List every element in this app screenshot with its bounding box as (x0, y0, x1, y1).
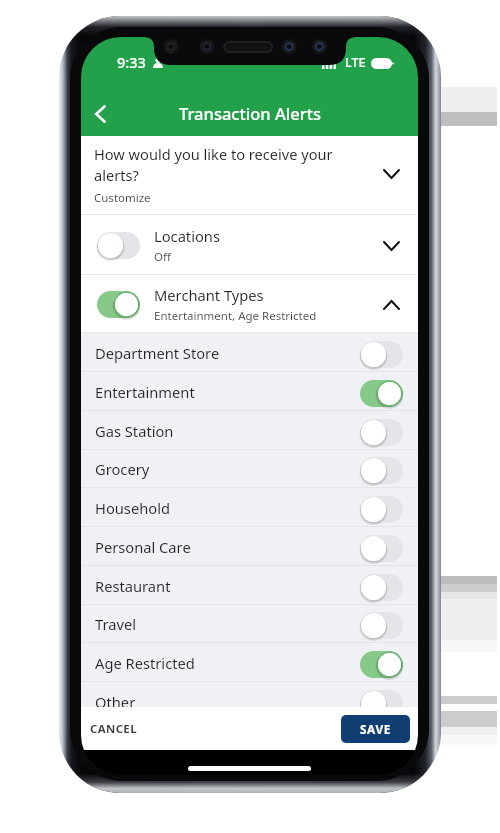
staticText: Restaurant (95, 576, 171, 596)
button[interactable]: Toggle off (360, 574, 403, 601)
staticText: Travel (95, 614, 136, 634)
staticText: Locations (154, 226, 220, 246)
staticText: Transaction Alerts (179, 102, 321, 124)
button[interactable]: Household (81, 488, 418, 527)
staticText: Customize (94, 190, 151, 206)
button[interactable]: Toggle off (360, 457, 403, 484)
staticText: Age Restricted (95, 653, 195, 673)
staticText: Entertainment, Age Restricted (154, 308, 317, 324)
button[interactable]: Department Store (81, 333, 418, 372)
staticText: Off (154, 249, 171, 265)
staticText: Other (95, 692, 136, 712)
button[interactable]: Personal Care (81, 527, 418, 566)
button[interactable]: Toggle off (360, 690, 403, 717)
button[interactable]: Restaurant (81, 566, 418, 605)
button[interactable]: Toggle off (360, 612, 403, 639)
button[interactable]: Toggle off (360, 419, 403, 446)
button[interactable]: Toggle off (97, 232, 140, 259)
button[interactable]: Toggle on (81, 275, 418, 333)
button[interactable]: Travel (81, 604, 418, 643)
staticText: Household (95, 498, 170, 518)
staticText: CANCEL (90, 721, 137, 737)
button[interactable]: Toggle on (360, 380, 403, 407)
staticText: Grocery (95, 459, 150, 479)
button[interactable]: Toggle off (360, 535, 403, 562)
button[interactable]: CANCEL (90, 721, 137, 737)
staticText: Merchant Types (154, 285, 264, 305)
staticText: 9:33 (117, 52, 146, 72)
button[interactable]: Toggle off (81, 215, 418, 275)
button[interactable]: Toggle off (360, 341, 403, 368)
button[interactable]: Back (84, 97, 117, 130)
staticText: SAVE (360, 721, 391, 737)
button[interactable]: Toggle on (360, 651, 403, 678)
button[interactable]: Toggle on (97, 291, 140, 318)
button[interactable]: How would you like to receive your alert… (81, 136, 418, 215)
staticText: Department Store (95, 343, 220, 363)
button[interactable]: Age Restricted (81, 643, 418, 682)
staticText: Entertainment (95, 382, 195, 402)
button[interactable]: SAVE (341, 715, 410, 743)
button[interactable]: Grocery (81, 449, 418, 488)
staticText: LTE (345, 54, 366, 71)
button[interactable]: Entertainment (81, 372, 418, 411)
staticText: How would you like to receive your alert… (94, 144, 360, 186)
staticText: Gas Station (95, 421, 174, 441)
staticText: Personal Care (95, 537, 191, 557)
button[interactable]: Other (81, 682, 418, 721)
button[interactable]: Toggle off (360, 496, 403, 523)
button[interactable]: Gas Station (81, 411, 418, 450)
